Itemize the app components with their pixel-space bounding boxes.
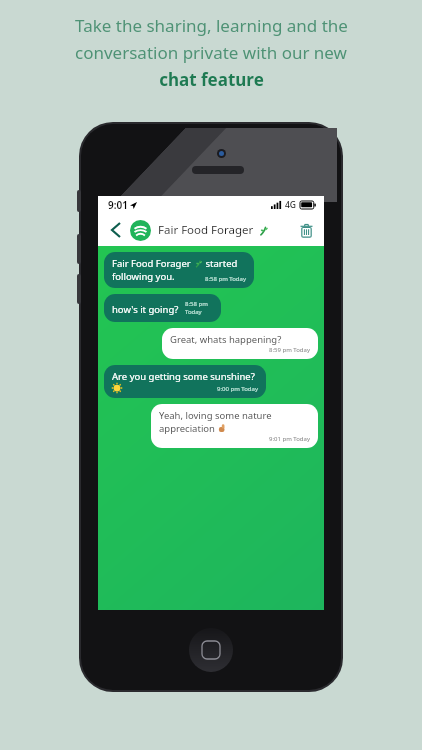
staticText: how's it going?	[112, 303, 179, 316]
staticText: started	[203, 257, 238, 270]
staticText: Fair Food Forager	[158, 222, 254, 238]
staticText: following you.	[112, 270, 175, 283]
staticText: 9:01	[108, 198, 128, 212]
button[interactable]: Yeah, loving some nature	[151, 404, 318, 448]
button[interactable]: Back	[106, 220, 126, 240]
staticText: 9:01 pm Today	[269, 435, 310, 443]
staticText: 4G	[285, 199, 297, 211]
staticText: Yeah, loving some nature	[159, 409, 272, 422]
staticText: 8:59 pm Today	[269, 346, 310, 354]
staticText: Take the sharing, learning and the	[75, 14, 348, 37]
button[interactable]: Home	[189, 628, 233, 672]
button[interactable]: Great, whats happening?	[162, 328, 318, 359]
staticText: conversation private with our new	[75, 41, 347, 64]
staticText: 8:58 pm Today	[205, 275, 246, 283]
staticText: chat feature	[159, 68, 264, 91]
button[interactable]: Delete conversation	[296, 220, 316, 240]
staticText: 9:00 pm Today	[217, 385, 258, 393]
button[interactable]: Fair Food Forager	[104, 252, 254, 288]
staticText: appreciation	[159, 422, 218, 435]
staticText: Great, whats happening?	[170, 333, 282, 346]
staticText: 8:58 pm Today	[185, 300, 213, 316]
button[interactable]: Are you getting some sunshine?	[104, 365, 266, 398]
staticText: Are you getting some sunshine?	[112, 370, 255, 383]
staticText: Fair Food Forager	[112, 257, 194, 270]
button[interactable]: how's it going?	[104, 294, 221, 322]
